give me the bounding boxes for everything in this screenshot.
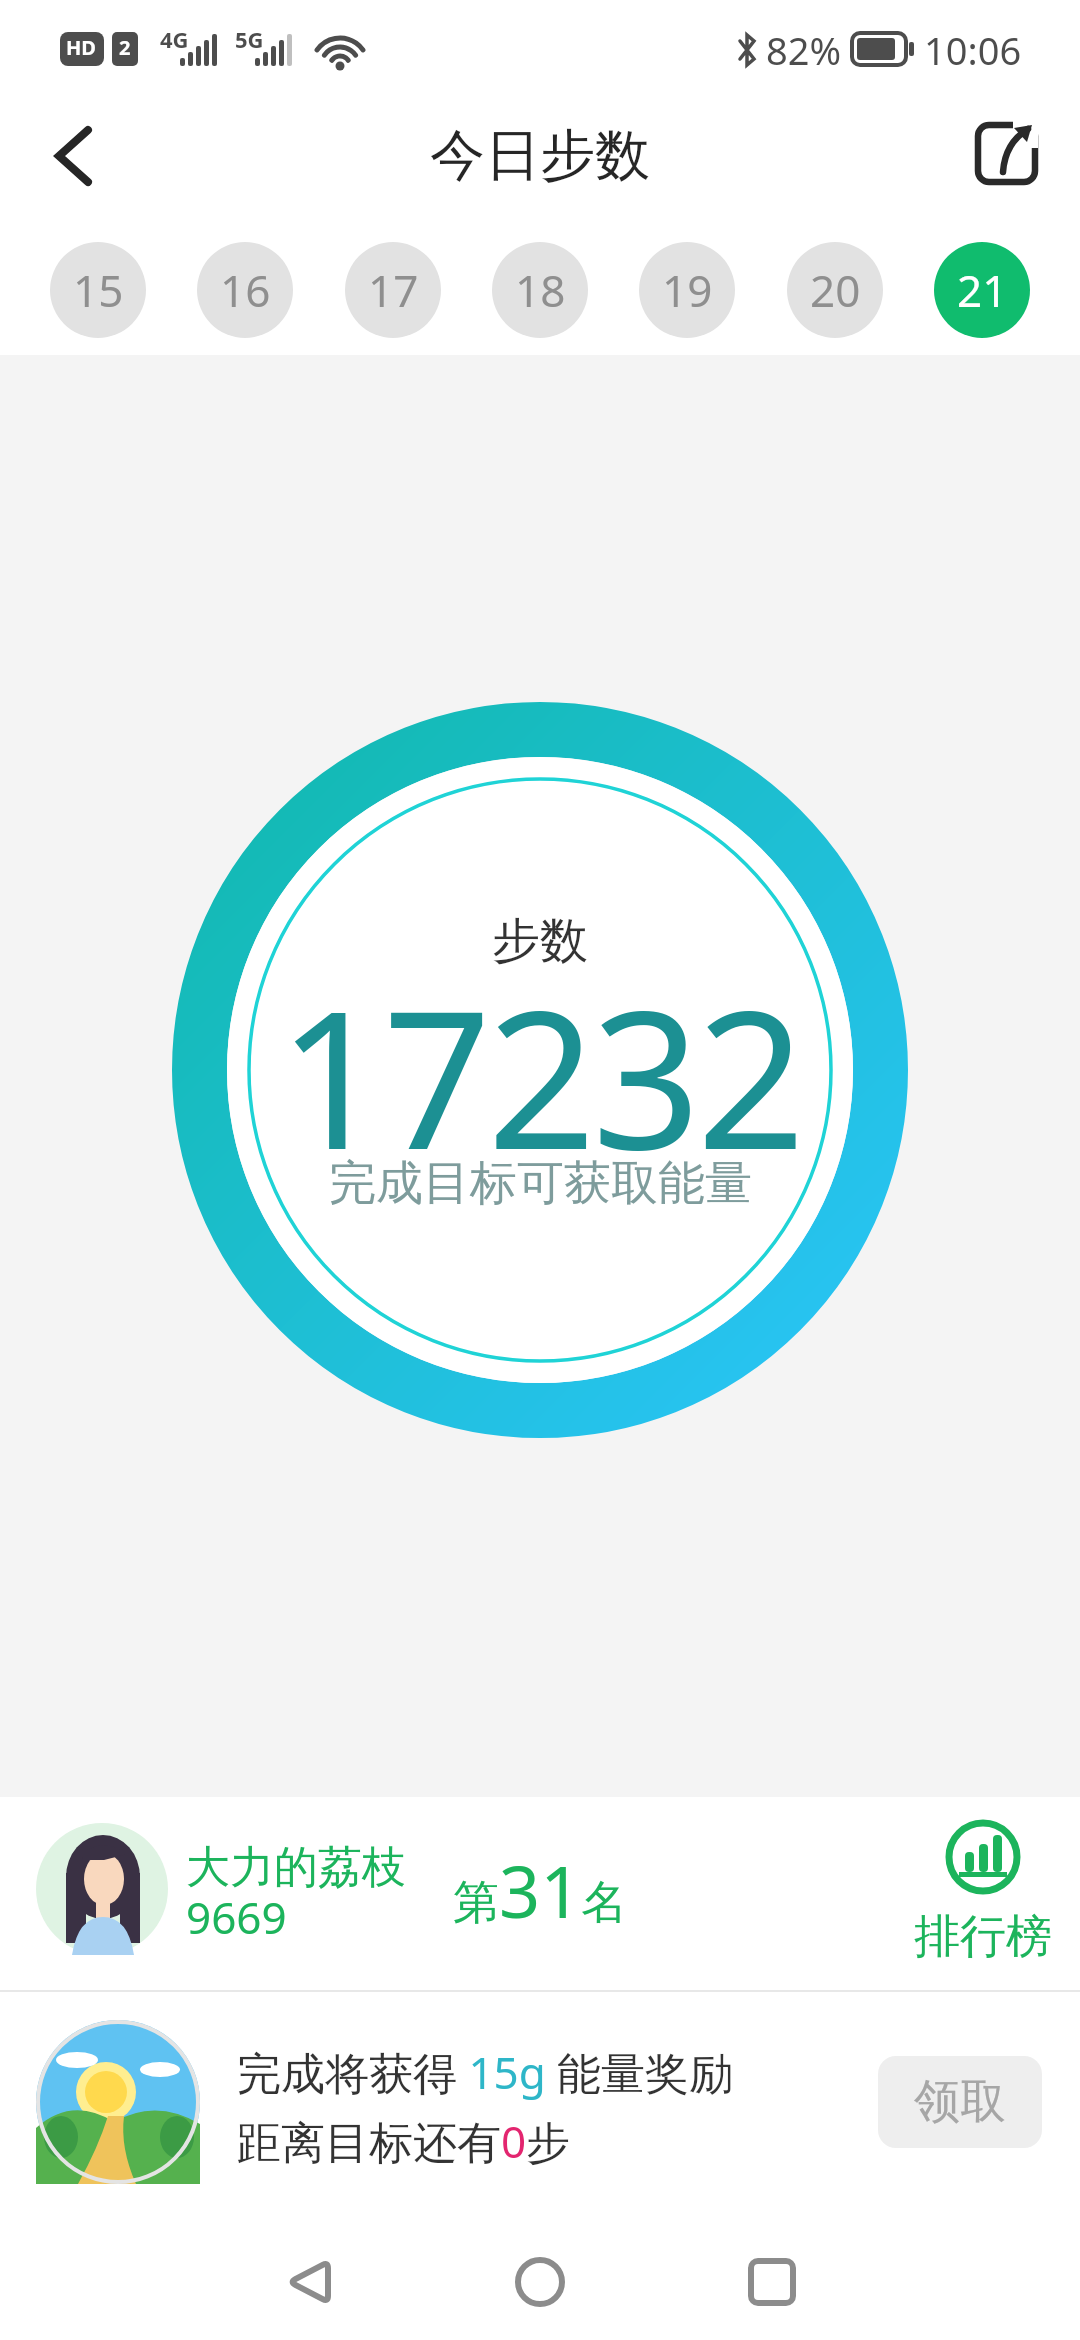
button[interactable]: 20 [787, 242, 883, 338]
button[interactable] [742, 2257, 798, 2313]
staticText: 今日步数 [430, 121, 650, 190]
staticText: 15 [73, 260, 124, 320]
button[interactable]: 领取 [878, 2056, 1042, 2148]
staticText: 步数 [492, 911, 588, 971]
button[interactable] [282, 2257, 338, 2313]
staticText: 9669 [186, 1887, 287, 1947]
staticText: 17232 [278, 946, 802, 1205]
staticText: 19 [662, 260, 713, 320]
button[interactable] [512, 2257, 568, 2313]
staticText: 82% [766, 24, 842, 76]
staticText: 4G [160, 24, 189, 54]
button[interactable]: 16 [197, 242, 293, 338]
button[interactable]: 18 [492, 242, 588, 338]
button[interactable]: 大力的荔枝 [0, 1797, 1080, 1990]
button[interactable] [44, 125, 104, 185]
staticText: 21 [957, 260, 1008, 320]
staticText: HD [66, 34, 96, 61]
staticText: 领取 [914, 2073, 1006, 2131]
staticText: 完成目标可获取能量 [329, 1154, 752, 1213]
staticText: 排行榜 [914, 1908, 1052, 1966]
staticText: 完成将获得 15g 能量奖励 [237, 2042, 734, 2102]
staticText: 17 [368, 260, 419, 320]
staticText: 10:06 [924, 24, 1022, 76]
button[interactable]: 19 [639, 242, 735, 338]
staticText: 20 [810, 260, 861, 320]
button[interactable]: 21 [934, 242, 1030, 338]
staticText: 大力的荔枝 [186, 1840, 406, 1895]
button[interactable]: 排行榜 [914, 1818, 1052, 1966]
button[interactable]: 15 [50, 242, 146, 338]
staticText: 5G [235, 24, 264, 54]
staticText: 18 [515, 260, 566, 320]
staticText: 16 [220, 260, 271, 320]
button[interactable]: 17 [345, 242, 441, 338]
staticText: 距离目标还有0步 [237, 2111, 571, 2171]
button[interactable] [976, 121, 1038, 183]
staticText: 第31名 [453, 1841, 628, 1939]
staticText: 2 [119, 34, 131, 61]
